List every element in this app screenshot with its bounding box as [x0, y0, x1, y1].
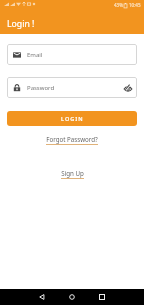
- staticText: Sign Up: [61, 169, 84, 177]
- button[interactable]: Forgot Password?: [46, 135, 98, 145]
- staticText: Forgot Password?: [46, 135, 98, 143]
- staticText: 43%: [114, 2, 123, 8]
- staticText: Login !: [7, 18, 35, 30]
- button[interactable]: Recents: [94, 289, 110, 305]
- button[interactable]: Toggle password visibility: [118, 78, 137, 97]
- button[interactable]: Back: [34, 289, 50, 305]
- staticText: LOGIN: [61, 115, 84, 123]
- staticText: Password: [27, 84, 55, 92]
- button[interactable]: Password: [7, 77, 137, 98]
- button[interactable]: LOGIN: [7, 111, 137, 126]
- button[interactable]: Email: [7, 44, 137, 65]
- staticText: Email: [27, 51, 43, 59]
- staticText: 10:45: [129, 2, 141, 8]
- button[interactable]: Home: [64, 289, 80, 305]
- button[interactable]: Sign Up: [61, 169, 84, 179]
